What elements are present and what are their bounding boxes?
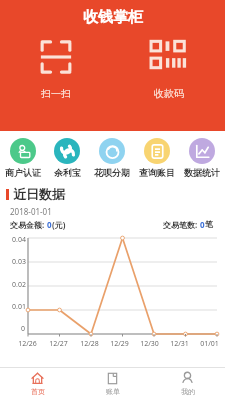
staticText: 2018-01-01 [10,206,52,217]
staticText: 近日数据 [13,186,65,202]
button[interactable]: 扫一扫 [0,33,112,103]
staticText: 笔 [205,219,213,229]
staticText: 扫一扫 [41,87,71,100]
staticText: 收款码 [154,87,184,100]
staticText: 数据统计 [184,167,220,178]
button[interactable]: 账单 [75,367,150,400]
staticText: 查询账目 [139,167,175,178]
button[interactable]: 收款码 [112,33,225,103]
staticText: 0 [47,219,52,230]
staticText: 0.04 [12,235,26,245]
staticText: 12/29 [110,339,129,349]
staticText: 0.03 [12,257,26,267]
staticText: 账单 [106,387,120,396]
staticText: 12/26 [18,339,37,349]
button[interactable]: 查询账目 [134,137,179,179]
button[interactable]: 我的 [150,367,225,400]
button[interactable]: 余利宝 [45,137,89,179]
staticText: 交易笔数: [163,219,200,230]
staticText: 花呗分期 [94,167,130,178]
staticText: 商户认证 [5,167,41,178]
staticText: 我的 [181,387,195,396]
button[interactable]: 商户认证 [1,137,45,179]
other: 收款码 [148,36,190,78]
staticText: 余利宝 [54,167,81,178]
staticText: 0 [200,219,205,230]
staticText: 01/01 [200,339,219,349]
staticText: 12/28 [80,339,99,349]
staticText: (元) [52,219,66,230]
staticText: 12/30 [140,339,159,349]
other: 扫一扫 [35,36,77,78]
button[interactable]: 花呗分期 [89,137,134,179]
staticText: 0.02 [12,280,26,290]
staticText: 0.01 [12,302,26,312]
button[interactable]: 数据统计 [179,137,224,179]
staticText: 12/31 [170,339,189,349]
staticText: 交易金额: [10,219,47,230]
staticText: 12/27 [49,339,68,349]
staticText: 收钱掌柜 [83,8,143,27]
staticText: 0 [21,324,26,334]
button[interactable]: 首页 [0,367,75,400]
staticText: 首页 [31,387,45,396]
